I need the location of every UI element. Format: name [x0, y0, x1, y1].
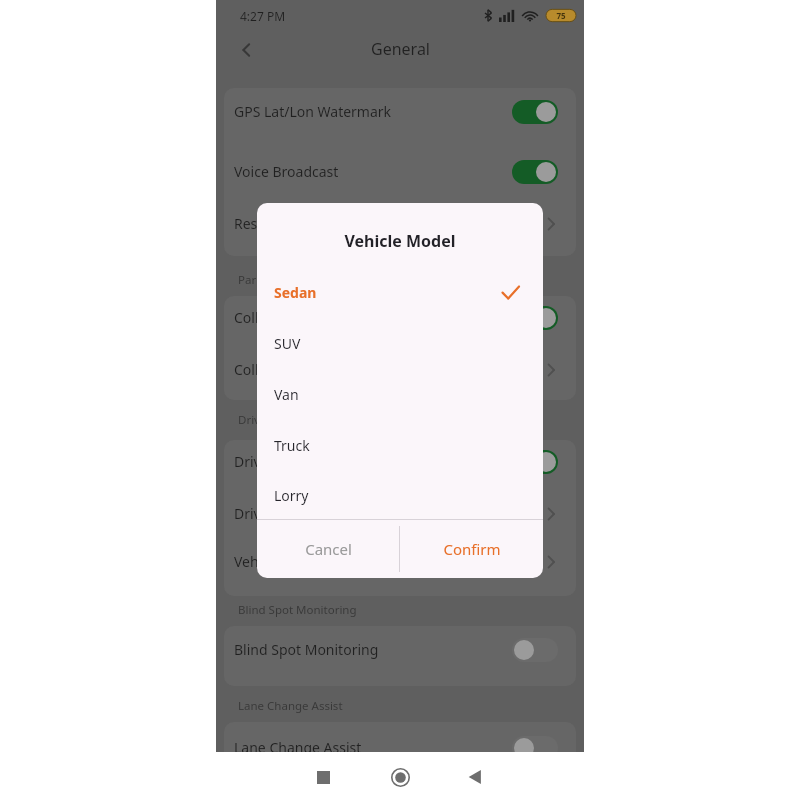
staticText: Collision Sensitivity [234, 360, 360, 379]
button[interactable]: Reset All Settings [224, 202, 576, 246]
button[interactable]: Blind Spot Monitoring [224, 628, 576, 672]
staticText: Voice Broadcast [234, 162, 339, 181]
button[interactable]: Lorry [257, 474, 543, 518]
button[interactable]: Lane Change Assist [224, 726, 576, 770]
staticText: Van [274, 385, 299, 404]
button[interactable]: Home [387, 764, 413, 790]
staticText: Lane Change Assist [234, 738, 362, 757]
staticText: Confirm [443, 539, 501, 559]
button[interactable]: Recents [310, 764, 336, 790]
staticText: Blind Spot Monitoring [238, 602, 357, 618]
button[interactable]: Confirm [400, 520, 543, 578]
button[interactable]: Driving Sensitivity [224, 492, 576, 536]
button[interactable]: Collision Detection [224, 296, 576, 340]
button[interactable]: Van [257, 373, 543, 417]
staticText: Lane Change Assist [238, 698, 343, 714]
button[interactable]: Back [226, 32, 268, 68]
staticText: 75 [556, 10, 566, 21]
staticText: Driving Sensitivity [234, 504, 352, 523]
staticText: 4:27 PM [240, 8, 286, 24]
staticText: GPS Lat/Lon Watermark [234, 102, 392, 121]
button[interactable]: Back [462, 764, 488, 790]
staticText: General [371, 38, 430, 60]
staticText: Truck [274, 436, 310, 455]
button[interactable]: Collision Sensitivity [224, 348, 576, 392]
staticText: Cancel [305, 539, 352, 559]
staticText: Parking Monitoring [238, 272, 343, 288]
staticText: Reset All Settings [234, 214, 347, 233]
staticText: Lorry [274, 486, 309, 505]
staticText: Driving Recorder [234, 452, 345, 471]
staticText: SUV [274, 334, 301, 353]
staticText: Blind Spot Monitoring [234, 640, 379, 659]
button[interactable]: SUV [257, 322, 543, 366]
button[interactable]: GPS Lat/Lon Watermark [224, 90, 576, 134]
button[interactable]: Driving Recorder [224, 440, 576, 484]
staticText: Vehicle Model [234, 552, 326, 571]
button[interactable]: Voice Broadcast [224, 150, 576, 194]
button[interactable]: Vehicle Model [224, 540, 576, 584]
button[interactable]: Cancel [257, 520, 399, 578]
staticText: Vehicle Model [344, 230, 456, 252]
button[interactable]: Truck [257, 424, 543, 468]
staticText: Sedan [274, 283, 317, 302]
staticText: Collision Detection [234, 308, 357, 327]
button[interactable]: Sedan [257, 271, 543, 315]
staticText: Driving Assistance [238, 412, 337, 428]
